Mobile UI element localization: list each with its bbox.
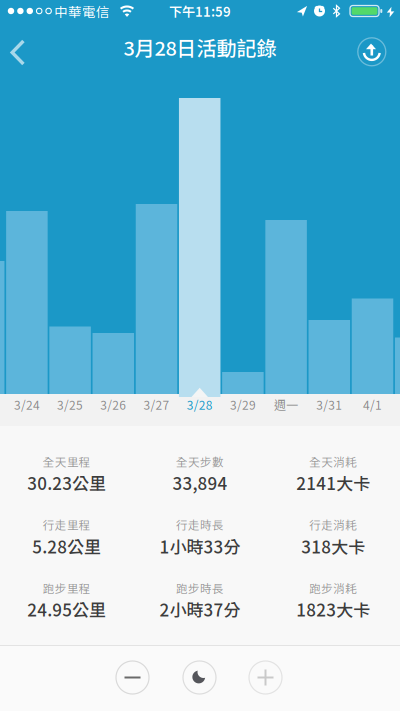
staticText: 週一 [274, 396, 298, 413]
staticText: 全天里程 [43, 453, 91, 470]
staticText: 1823大卡 [296, 597, 370, 621]
staticText: 全天步數 [176, 453, 224, 470]
staticText: 2141大卡 [296, 470, 370, 495]
staticText: 3/25 [57, 396, 83, 413]
staticText: 33,894 [172, 470, 227, 495]
staticText: 跑步里程 [43, 580, 91, 596]
staticText: 24.95公里 [27, 597, 106, 621]
staticText: 跑步消耗 [309, 580, 357, 596]
staticText: 3/26 [100, 396, 126, 413]
staticText: 跑步時長 [176, 580, 224, 596]
staticText: 中華電信 [54, 1, 110, 21]
staticText: 1小時33分 [159, 534, 240, 558]
staticText: 3月28日活動記錄 [123, 32, 276, 61]
staticText: 30.23公里 [27, 470, 106, 495]
staticText: 行走消耗 [309, 516, 357, 533]
staticText: 5.28公里 [32, 534, 101, 558]
staticText: 3/31 [316, 396, 342, 413]
staticText: 下午11:59 [169, 1, 231, 20]
staticText: 3/27 [143, 396, 169, 413]
staticText: 318大卡 [301, 534, 365, 558]
staticText: 4/1 [363, 396, 382, 413]
staticText: 行走時長 [176, 516, 224, 533]
staticText: 2小時37分 [159, 597, 240, 621]
staticText: 3/29 [230, 396, 256, 413]
staticText: 3/28 [187, 396, 213, 413]
staticText: 3/24 [14, 396, 40, 413]
staticText: 全天消耗 [309, 453, 357, 470]
staticText: 行走里程 [43, 516, 91, 533]
